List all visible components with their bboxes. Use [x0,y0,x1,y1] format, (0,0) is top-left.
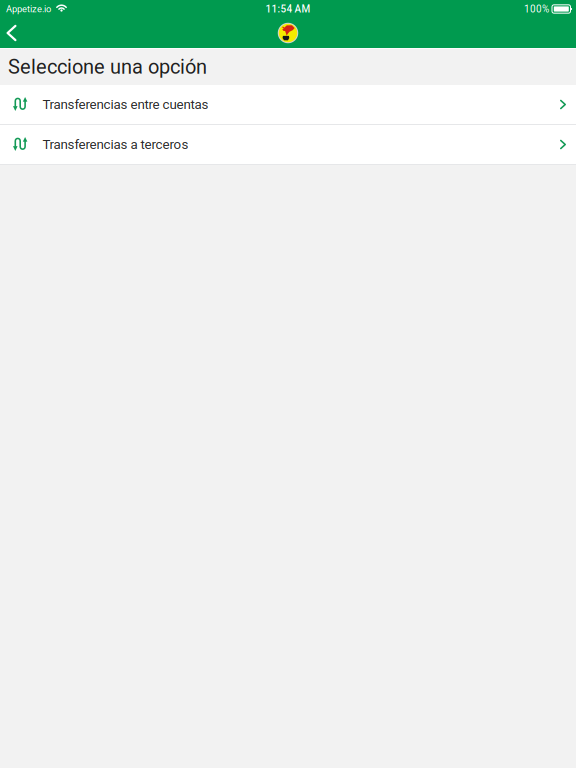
staticText: Transferencias entre cuentas [42,97,208,112]
staticText: Seleccione una opción [8,55,207,79]
staticText: Appetize.io [6,3,51,14]
staticText: Transferencias a terceros [42,137,188,152]
button[interactable]: Transferencias entre cuentas [0,85,576,124]
staticText: 11:54 AM [265,3,310,15]
button[interactable]: Transferencias a terceros [0,125,576,164]
button[interactable]: Back [0,20,23,46]
staticText: 100% [524,3,549,15]
